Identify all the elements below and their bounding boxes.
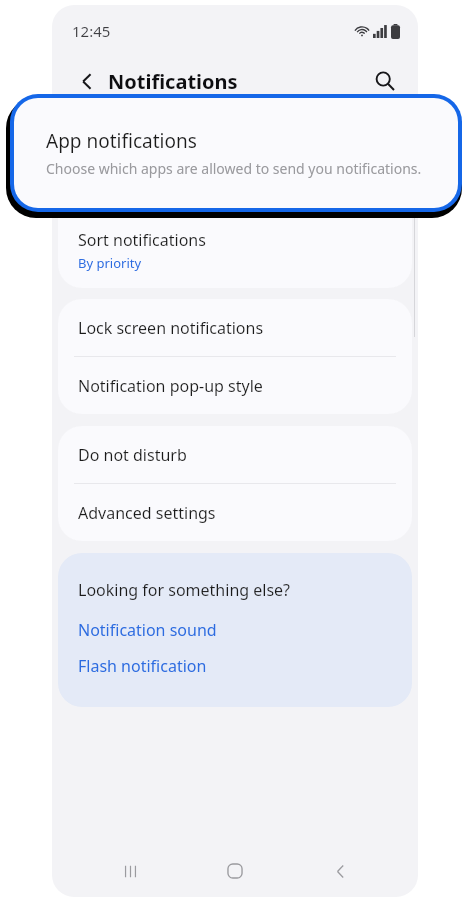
button[interactable]: Recents — [103, 845, 157, 897]
staticText: 12:45 — [72, 21, 111, 41]
staticText: Sort notifications — [78, 229, 206, 251]
staticText: Flash notification — [78, 655, 207, 677]
staticText: Notification sound — [78, 619, 217, 641]
staticText: Looking for something else? — [78, 579, 291, 601]
button[interactable]: Lock screen notifications — [58, 299, 412, 356]
staticText: Notifications — [108, 68, 238, 95]
staticText: Do not disturb — [78, 444, 187, 466]
button[interactable]: Flash notification — [78, 651, 207, 681]
staticText: Choose which apps are allowed to send yo… — [46, 159, 422, 178]
button[interactable]: Notification sound — [78, 615, 217, 645]
button[interactable]: Do not disturb — [58, 426, 412, 483]
button[interactable]: Back — [313, 845, 367, 897]
button[interactable]: Home — [208, 845, 262, 897]
button[interactable]: Notification pop-up style — [58, 357, 412, 414]
staticText: Advanced settings — [78, 502, 216, 524]
button[interactable]: Advanced settings — [58, 484, 412, 541]
button[interactable]: Search — [368, 64, 402, 98]
button[interactable]: Back — [70, 64, 104, 98]
staticText: Lock screen notifications — [78, 317, 264, 339]
button[interactable]: App notifications — [14, 98, 458, 208]
button[interactable]: Sort notifications — [58, 212, 412, 288]
staticText: App notifications — [46, 128, 197, 154]
staticText: Notification pop-up style — [78, 375, 263, 397]
staticText: By priority — [78, 254, 142, 272]
